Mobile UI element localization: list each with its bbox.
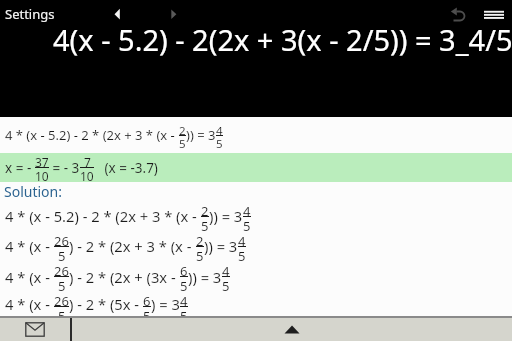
staticText: 5: [201, 217, 209, 231]
staticText: 2: [179, 123, 186, 135]
button[interactable]: 4 * (x -: [0, 231, 512, 261]
staticText: 5: [180, 307, 188, 316]
staticText: x = -: [5, 159, 35, 177]
button[interactable]: Solution:: [0, 182, 512, 201]
staticText: 4 * (x -: [5, 294, 54, 314]
staticText: Settings: [5, 5, 55, 23]
staticText: 2: [201, 202, 209, 216]
staticText: 4: [238, 232, 246, 246]
staticText: )) = 3: [209, 206, 243, 226]
staticText: Solution:: [4, 182, 62, 201]
button[interactable]: Settings: [0, 0, 55, 23]
staticText: 5: [143, 307, 151, 316]
staticText: 10: [35, 168, 49, 181]
staticText: 37: [35, 154, 49, 167]
button[interactable]: 4 * (x -: [0, 261, 512, 292]
staticText: 4 * (x - 5.2) - 2 * (2x + 3 * (x -: [5, 206, 201, 226]
button[interactable]: 4 * (x - 5.2) - 2 * (2x + 3 * (x -: [0, 201, 512, 231]
staticText: 4 * (x - 5.2) - 2 * (2x + 3 * (x -: [5, 126, 179, 144]
staticText: 6: [143, 292, 151, 306]
button[interactable]: 4 * (x -: [0, 292, 512, 316]
staticText: 5: [179, 136, 186, 148]
staticText: 5: [58, 247, 66, 261]
staticText: )) = 3: [204, 236, 238, 256]
staticText: 4(x - 5.2) - 2(2x + 3(x - 2/5)) = 3_4/5: [53, 20, 512, 59]
button[interactable]: 4 * (x - 5.2) - 2 * (2x + 3 * (x -: [0, 117, 512, 153]
staticText: 5: [222, 277, 230, 291]
staticText: 5: [196, 247, 204, 261]
button[interactable]: x = -: [0, 153, 512, 182]
button[interactable]: [108, 3, 126, 25]
staticText: 5: [216, 136, 223, 148]
button[interactable]: [446, 2, 470, 26]
staticText: 26: [54, 232, 69, 246]
staticText: 6: [180, 262, 188, 276]
staticText: )) = 3: [188, 267, 222, 287]
staticText: ) - 2 * (2x + 3 * (x -: [69, 236, 196, 256]
button[interactable]: [480, 4, 508, 24]
staticText: 2: [196, 232, 204, 246]
staticText: (x = -3.7): [94, 159, 158, 177]
staticText: ) = 3: [151, 294, 180, 314]
staticText: 7: [84, 154, 91, 167]
staticText: 4: [243, 202, 251, 216]
staticText: 4 * (x -: [5, 236, 54, 256]
staticText: 4 * (x -: [5, 267, 54, 287]
staticText: 26: [54, 292, 69, 306]
staticText: 5: [58, 277, 66, 291]
staticText: 10: [80, 168, 94, 181]
staticText: 5: [238, 247, 246, 261]
button[interactable]: [166, 3, 184, 25]
staticText: 4: [222, 262, 230, 276]
staticText: ) - 2 * (2x + (3x -: [69, 267, 180, 287]
staticText: 5: [58, 307, 66, 316]
staticText: ) - 2 * (5x -: [69, 294, 143, 314]
staticText: = - 3: [49, 159, 80, 177]
staticText: 4: [216, 123, 223, 135]
staticText: 5: [243, 217, 251, 231]
staticText: 4: [180, 292, 188, 306]
staticText: 5: [180, 277, 188, 291]
button[interactable]: [0, 318, 70, 341]
staticText: 26: [54, 262, 69, 276]
staticText: )) = 3: [186, 126, 216, 144]
button[interactable]: [270, 318, 314, 341]
